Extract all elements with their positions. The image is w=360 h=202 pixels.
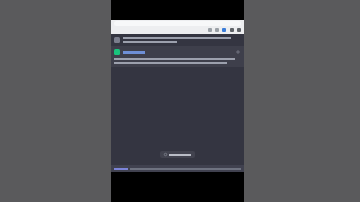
button[interactable]: Copy [236, 50, 240, 54]
button[interactable]: Share [215, 28, 219, 32]
button[interactable] [111, 34, 244, 46]
button[interactable]: Menu [237, 28, 241, 32]
button[interactable]: Copy [111, 46, 244, 67]
button[interactable]: Account [222, 28, 226, 32]
button[interactable]: Search [208, 28, 212, 32]
button[interactable]: Extensions [230, 28, 234, 32]
button[interactable] [164, 153, 191, 156]
